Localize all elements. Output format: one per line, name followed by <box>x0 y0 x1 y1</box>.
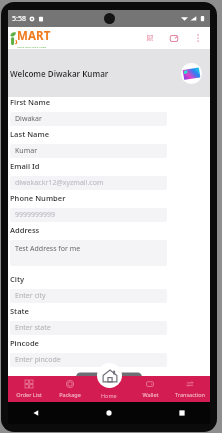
staticText: Pincode <box>10 338 39 348</box>
button[interactable]: Diwakar <box>10 112 167 126</box>
button[interactable]: Back <box>30 407 42 419</box>
button[interactable]: Cart <box>167 31 181 45</box>
staticText: City <box>10 274 25 284</box>
staticText: Email Id <box>10 161 40 171</box>
button[interactable]: 9999999999 <box>10 208 167 222</box>
button[interactable]: Profile photo <box>181 63 202 84</box>
staticText: Home <box>101 392 117 399</box>
staticText: Last Name <box>10 129 50 139</box>
staticText: Enter pincode <box>15 355 61 365</box>
button[interactable]: Enter pincode <box>10 353 167 367</box>
staticText: 5:58 <box>12 14 26 24</box>
staticText: First Name <box>10 97 51 107</box>
staticText: Enter state <box>15 323 51 333</box>
staticText: Wallet <box>142 391 159 398</box>
button[interactable]: Package <box>49 376 90 402</box>
button[interactable]: Recent apps <box>176 407 188 419</box>
button[interactable]: Enter state <box>10 321 167 335</box>
button[interactable]: More options <box>191 31 205 45</box>
button[interactable]: Test Address for me <box>10 240 167 266</box>
button[interactable]: diwakar.kr12@xyzmail.com <box>10 176 167 190</box>
button[interactable]: iMART home <box>10 28 51 48</box>
staticText: Kumar <box>15 146 38 156</box>
button[interactable]: Home <box>97 363 122 388</box>
staticText: State <box>10 306 29 316</box>
staticText: diwakar.kr12@xyzmail.com <box>15 178 104 188</box>
staticText: Diwakar <box>15 114 42 124</box>
button[interactable]: Kumar <box>10 144 167 158</box>
staticText: Welcome Diwakar Kumar <box>10 68 109 79</box>
button[interactable]: Enter city <box>10 289 167 303</box>
staticText: Enter city <box>15 291 46 301</box>
staticText: Package <box>59 391 81 398</box>
staticText: 9999999999 <box>15 210 56 220</box>
button[interactable]: Order List <box>8 376 49 402</box>
staticText: Transaction <box>175 391 205 398</box>
button[interactable]: Wallet <box>130 376 170 402</box>
button[interactable]: Scan QR code <box>143 31 157 45</box>
staticText: Order List <box>16 391 42 398</box>
staticText: Test Address for me <box>15 244 81 254</box>
staticText: Address <box>10 225 40 235</box>
staticText: Phone Number <box>10 193 66 203</box>
button[interactable]: Transaction <box>170 376 210 402</box>
staticText: MART <box>17 28 51 44</box>
staticText: YOUR ONE STOP SHOP <box>17 45 47 48</box>
button[interactable]: Home <box>103 407 115 419</box>
